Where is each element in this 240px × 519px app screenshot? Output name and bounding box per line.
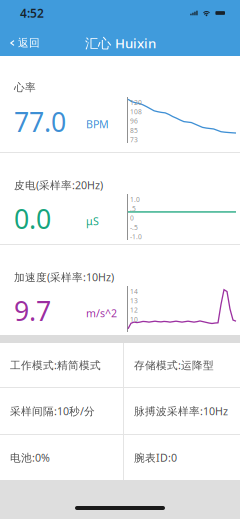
button[interactable]: 工作模式:精简模式 [0, 343, 123, 387]
staticText: 采样间隔:10秒/分 [10, 404, 95, 418]
staticText: 1.0 [130, 195, 140, 204]
staticText: 心率 [14, 81, 36, 94]
staticText: 10 [130, 315, 138, 324]
staticText: 12 [130, 306, 138, 314]
staticText: .5 [130, 204, 136, 213]
staticText: 工作模式:精简模式 [10, 358, 101, 372]
staticText: 108 [130, 107, 142, 116]
staticText: -.5 [130, 223, 138, 232]
staticText: 77.0 [14, 104, 66, 139]
staticText: 加速度(采样率:10Hz) [14, 270, 114, 284]
staticText: 腕表ID:0 [134, 450, 177, 465]
staticText: 14 [130, 287, 138, 296]
staticText: 存储模式:运降型 [134, 358, 214, 372]
button[interactable]: 腕表ID:0 [124, 435, 240, 480]
staticText: 0 [130, 214, 134, 222]
staticText: 13 [130, 296, 138, 305]
staticText: 4:52 [20, 5, 44, 21]
staticText: 电池:0% [10, 450, 50, 465]
staticText: μS [86, 214, 99, 228]
button[interactable]: 脉搏波采样率:10Hz [124, 388, 240, 434]
staticText: m/s^2 [86, 306, 117, 320]
staticText: 汇心 Huixin [85, 34, 156, 52]
staticText: -1.0 [130, 232, 142, 241]
staticText: 96 [130, 117, 138, 125]
staticText: 返回 [18, 36, 40, 49]
button[interactable]: 存储模式:运降型 [124, 343, 240, 387]
staticText: BPM [86, 117, 109, 131]
staticText: 73 [130, 135, 138, 144]
staticText: 脉搏波采样率:10Hz [134, 404, 228, 418]
staticText: 120 [130, 98, 142, 107]
button[interactable]: 采样间隔:10秒/分 [0, 388, 123, 434]
button[interactable]: 返回 [0, 30, 48, 56]
button[interactable]: 电池:0% [0, 435, 123, 480]
staticText: 9.7 [14, 293, 51, 328]
staticText: 85 [130, 126, 138, 135]
staticText: 皮电(采样率:20Hz) [14, 178, 103, 192]
staticText: 0.0 [14, 201, 51, 236]
